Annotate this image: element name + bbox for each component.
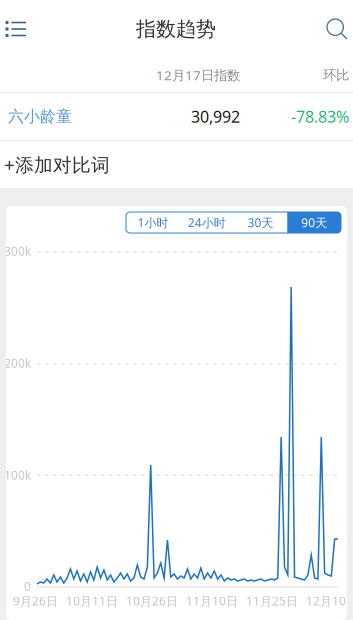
staticText: 30天 — [247, 214, 273, 230]
staticText: 300k — [4, 243, 31, 259]
staticText: 六小龄童 — [8, 107, 72, 126]
staticText: 11月10日 — [186, 593, 238, 609]
staticText: 1小时 — [137, 214, 168, 230]
staticText: -78.83% — [291, 106, 349, 127]
button[interactable]: 90天 — [287, 212, 341, 233]
button[interactable]: +添加对比词 — [0, 141, 110, 188]
staticText: 12月17日指数 — [156, 66, 240, 84]
staticText: 90天 — [301, 214, 327, 230]
staticText: 200k — [4, 355, 31, 371]
staticText: 12月10日 — [306, 593, 353, 609]
button[interactable]: Menu — [0, 0, 37, 58]
staticText: 24小时 — [188, 214, 226, 230]
staticText: 30,992 — [191, 106, 240, 127]
staticText: 10月26日 — [126, 593, 178, 609]
button[interactable]: 30天 — [233, 212, 287, 233]
button[interactable]: 24小时 — [180, 212, 234, 233]
button[interactable]: 1小时 — [126, 212, 180, 233]
staticText: 11月25日 — [246, 593, 298, 609]
staticText: 10月11日 — [66, 593, 118, 609]
staticText: 100k — [4, 467, 31, 483]
staticText: 指数趋势 — [136, 17, 216, 41]
button[interactable]: Search — [315, 0, 353, 58]
staticText: 9月26日 — [13, 593, 58, 609]
staticText: 环比 — [323, 67, 349, 83]
staticText: 0 — [24, 578, 31, 594]
staticText: +添加对比词 — [4, 152, 110, 177]
